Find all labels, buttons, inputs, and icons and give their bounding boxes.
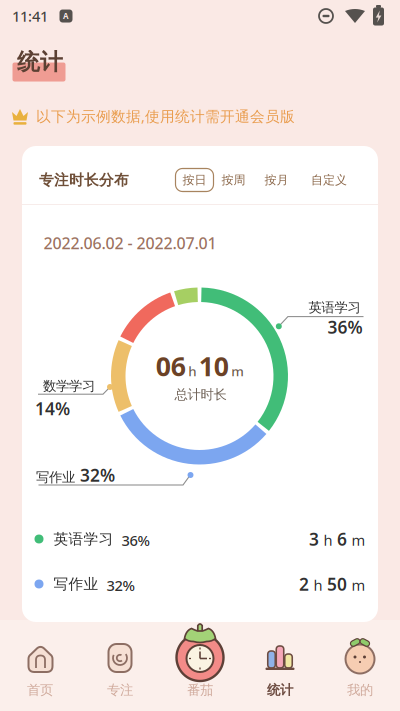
staticText: 14%	[35, 397, 70, 420]
staticText: 数学学习	[43, 378, 95, 394]
staticText: 英语学习	[308, 299, 360, 316]
staticText: 10	[199, 348, 229, 384]
staticText: 6	[337, 527, 347, 550]
staticText: 按月	[264, 173, 288, 187]
staticText: 50	[327, 572, 347, 595]
staticText: 2022.06.02 - 2022.07.01	[43, 232, 216, 254]
staticText: 首页	[27, 682, 53, 698]
staticText: 统计	[267, 682, 293, 698]
staticText: 番茄	[187, 682, 213, 698]
staticText: A	[63, 11, 69, 21]
staticText: 36%	[121, 530, 149, 550]
button[interactable]: 按月	[264, 173, 288, 187]
button[interactable]: 按周	[221, 173, 245, 187]
staticText: m	[231, 362, 244, 380]
staticText: 11:41	[12, 6, 48, 26]
button[interactable]: 我的	[320, 620, 400, 711]
staticText: 总计时长	[174, 386, 226, 403]
staticText: 按周	[221, 173, 245, 187]
staticText: 2	[299, 572, 309, 595]
button[interactable]: 以下为示例数据,使用统计需开通会员版	[11, 106, 295, 126]
staticText: 写作业	[36, 469, 75, 485]
staticText: 32%	[80, 463, 115, 486]
button[interactable]: 按日	[175, 168, 213, 191]
button[interactable]: 统计	[240, 620, 320, 711]
staticText: 专注	[107, 682, 133, 698]
staticText: 英语学习	[53, 530, 113, 548]
staticText: 以下为示例数据,使用统计需开通会员版	[36, 106, 295, 126]
staticText: 按日	[182, 173, 206, 187]
staticText: 36%	[327, 315, 362, 338]
staticText: 06	[156, 348, 186, 384]
staticText: h	[323, 530, 332, 550]
staticText: 3	[309, 527, 319, 550]
staticText: 自定义	[311, 173, 347, 187]
staticText: h	[188, 362, 196, 380]
staticText: m	[351, 575, 365, 595]
button[interactable]: 专注	[80, 620, 160, 711]
staticText: 统计	[17, 48, 63, 76]
staticText: 32%	[106, 575, 134, 595]
button[interactable]: 首页	[0, 620, 80, 711]
button[interactable]: 自定义	[311, 173, 347, 187]
staticText: h	[313, 575, 322, 595]
staticText: 写作业	[53, 575, 98, 593]
staticText: 专注时长分布	[39, 171, 129, 189]
staticText: 我的	[347, 682, 373, 698]
staticText: m	[351, 530, 365, 550]
button[interactable]: 番茄	[160, 620, 240, 711]
